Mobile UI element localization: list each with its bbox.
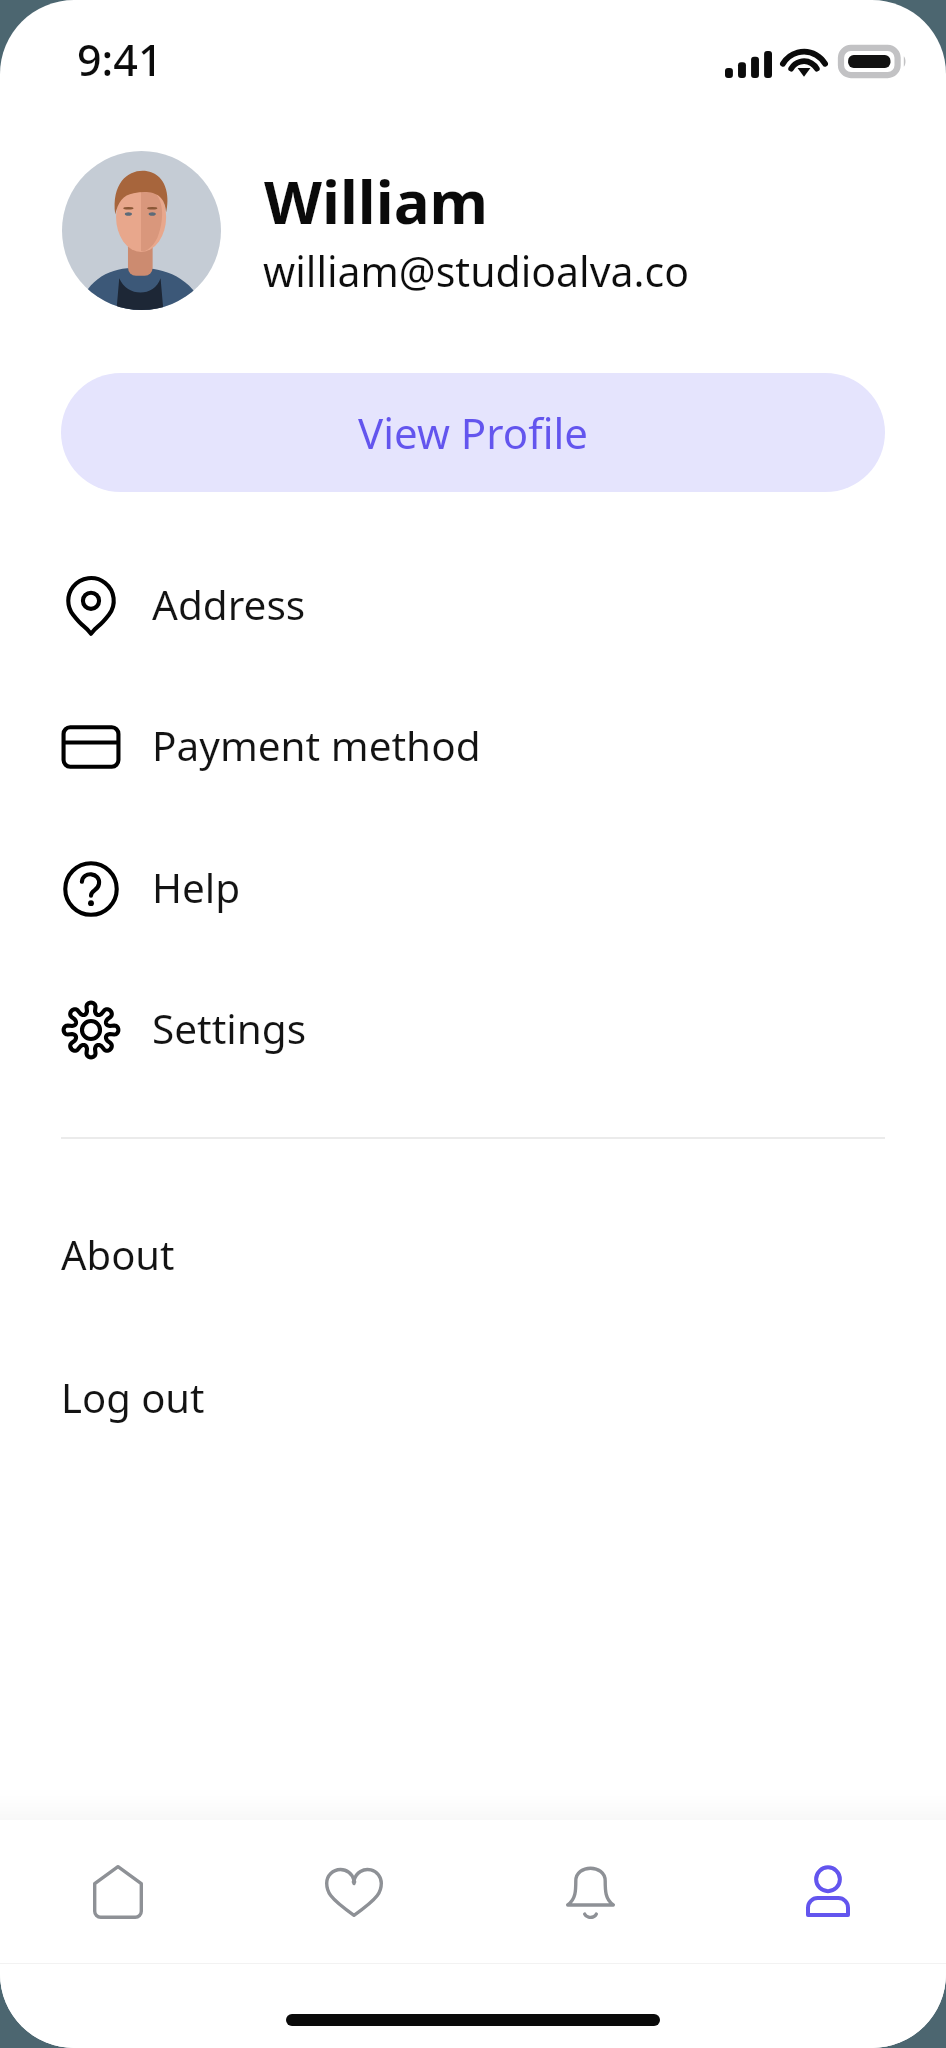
staticText: View Profile (358, 404, 588, 461)
staticText: William (264, 160, 489, 242)
staticText: Payment method (152, 718, 481, 773)
button[interactable]: Payment method (0, 677, 946, 817)
button[interactable]: Notifications (472, 1820, 709, 1963)
button[interactable]: Favorites (236, 1820, 472, 1963)
button[interactable]: Profile (709, 1820, 946, 1963)
button[interactable]: Home (0, 1820, 236, 1963)
button[interactable]: Address (0, 536, 946, 676)
staticText: Address (152, 577, 306, 632)
staticText: Help (152, 860, 241, 915)
staticText: Settings (152, 1001, 307, 1056)
staticText: william@studioalva.co (263, 243, 689, 299)
button[interactable]: Log out (0, 1327, 946, 1467)
button[interactable]: View Profile (61, 373, 885, 492)
staticText: About (61, 1227, 175, 1281)
staticText: Log out (61, 1370, 205, 1424)
button[interactable]: Settings (0, 960, 946, 1100)
button[interactable]: About (0, 1184, 946, 1324)
button[interactable]: Help (0, 819, 946, 959)
staticText: 9:41 (77, 30, 163, 89)
